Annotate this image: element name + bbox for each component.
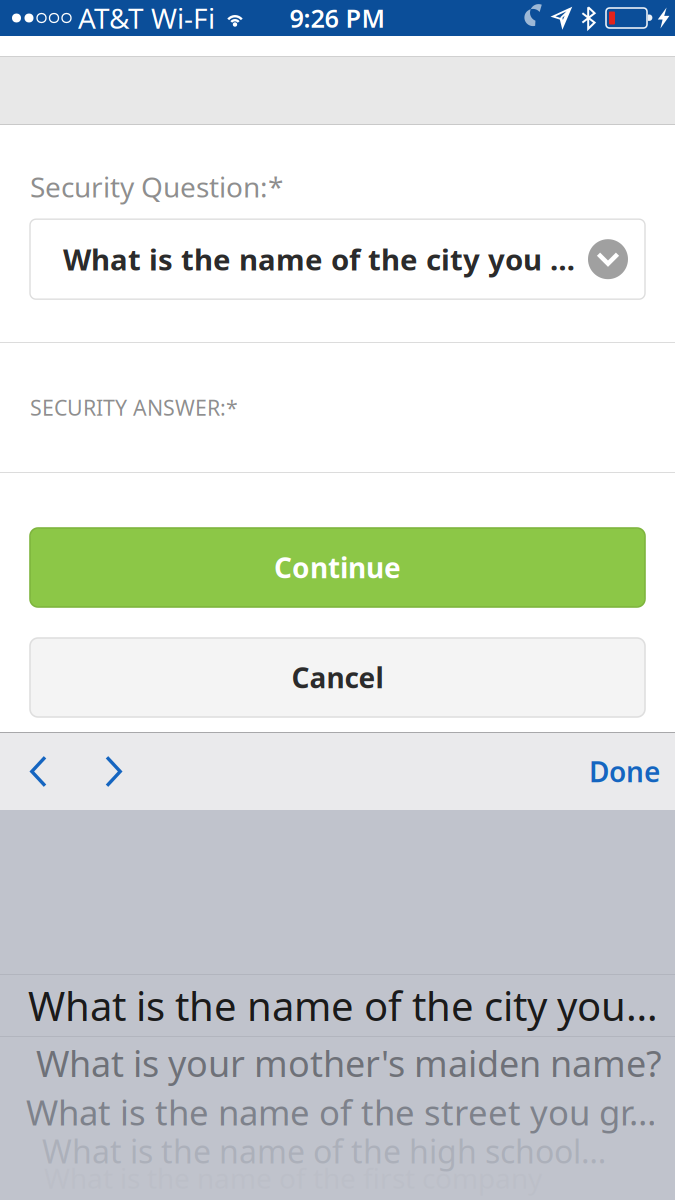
staticText: What is the name of the city you w… (63, 240, 582, 279)
staticText: What is the name of the city you… (28, 979, 658, 1032)
button[interactable]: Continue (30, 528, 645, 607)
staticText: What is the name of the street you gr… (26, 1089, 656, 1135)
staticText: Done (589, 753, 660, 790)
staticText: What is the name of the first company (44, 1159, 542, 1197)
staticText: 9:26 PM (289, 1, 385, 35)
button[interactable]: Done (569, 753, 663, 790)
staticText: What is the name of the high school… (42, 1130, 606, 1172)
staticText: Continue (274, 549, 401, 586)
button[interactable]: Next field (87, 755, 140, 787)
staticText: AT&T Wi-Fi (78, 0, 215, 37)
button[interactable]: Cancel (30, 638, 645, 717)
staticText: Cancel (291, 659, 383, 696)
staticText: What is your mother's maiden name? (36, 1039, 662, 1087)
button[interactable]: Previous field (12, 755, 87, 787)
button[interactable]: What is the name of the city you w… (30, 219, 645, 299)
staticText: Security Question:* (30, 168, 283, 205)
staticText: SECURITY ANSWER:* (30, 393, 238, 422)
